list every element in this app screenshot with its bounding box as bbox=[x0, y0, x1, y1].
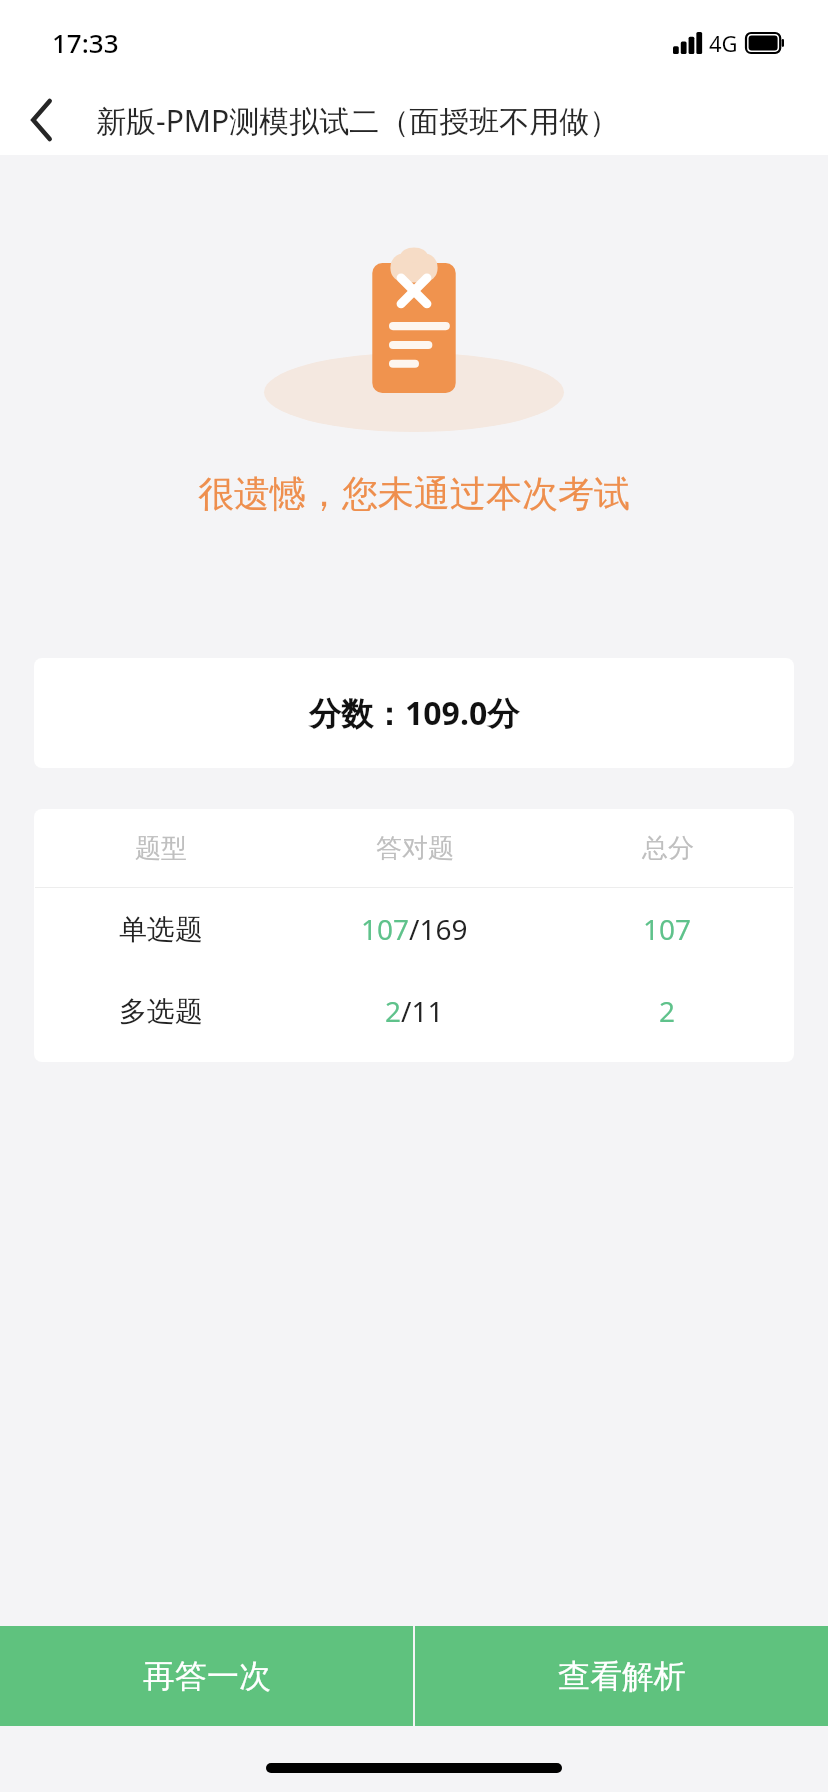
button[interactable]: Back bbox=[0, 85, 84, 155]
staticText: 107/169 bbox=[361, 910, 468, 948]
button[interactable]: 查看解析 bbox=[415, 1626, 828, 1726]
staticText: 17:33 bbox=[52, 25, 119, 60]
button[interactable]: 再答一次 bbox=[0, 1626, 413, 1726]
staticText: 107 bbox=[643, 910, 692, 948]
staticText: 再答一次 bbox=[143, 1656, 271, 1696]
staticText: 总分 bbox=[642, 832, 694, 865]
staticText: 新版-PMP测模拟试二（面授班不用做） bbox=[96, 100, 620, 141]
button[interactable]: 分数：109.0分 bbox=[34, 658, 794, 768]
staticText: 4G bbox=[709, 28, 738, 58]
staticText: 2/11 bbox=[385, 992, 444, 1030]
button[interactable]: 多选题 bbox=[34, 970, 794, 1052]
staticText: 题型 bbox=[135, 832, 187, 865]
staticText: 很遗憾，您未通过本次考试 bbox=[198, 471, 630, 516]
staticText: 查看解析 bbox=[558, 1656, 686, 1696]
staticText: 答对题 bbox=[376, 832, 454, 865]
button[interactable]: 单选题 bbox=[34, 888, 794, 970]
staticText: 分数：109.0分 bbox=[309, 691, 520, 735]
staticText: 单选题 bbox=[119, 912, 203, 947]
staticText: 2 bbox=[659, 992, 676, 1030]
staticText: 多选题 bbox=[119, 994, 203, 1029]
